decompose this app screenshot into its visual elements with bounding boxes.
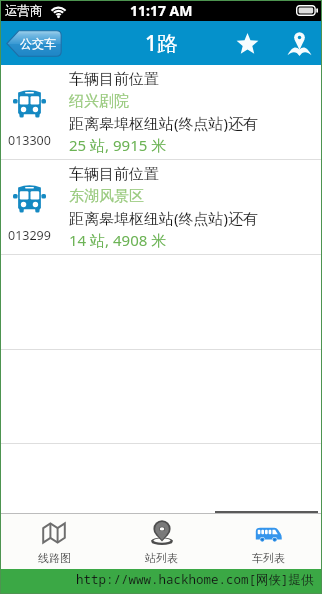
staticText: 距离皋埠枢纽站(终点站)还有: [69, 208, 259, 228]
button[interactable]: 车列表: [215, 514, 322, 569]
staticText: 运营商: [5, 3, 43, 19]
staticText: 1路: [145, 29, 179, 58]
staticText: 车列表: [252, 551, 285, 565]
button[interactable]: Map: [282, 26, 316, 60]
staticText: 线路图: [38, 551, 71, 565]
button[interactable]: 公交车: [6, 30, 62, 57]
staticText: 绍兴剧院: [69, 92, 129, 111]
staticText: 013299: [8, 227, 51, 244]
staticText: 站列表: [145, 551, 178, 565]
button[interactable]: 线路图: [0, 514, 108, 569]
button[interactable]: 站列表: [108, 514, 215, 569]
staticText: 距离皋埠枢纽站(终点站)还有: [69, 113, 259, 133]
button[interactable]: 013299: [0, 160, 322, 255]
staticText: 车辆目前位置: [69, 70, 159, 89]
staticText: 11:17 AM: [130, 1, 193, 20]
staticText: 车辆目前位置: [69, 165, 159, 184]
staticText: 14 站, 4908 米: [69, 230, 167, 250]
staticText: 公交车: [20, 36, 56, 51]
staticText: 东湖风景区: [69, 187, 144, 206]
staticText: 013300: [8, 132, 51, 149]
button[interactable]: 013300: [0, 65, 322, 160]
staticText: http://www.hackhome.com[网侠]提供: [76, 571, 314, 588]
staticText: 25 站, 9915 米: [69, 135, 167, 155]
button[interactable]: Favorite: [230, 26, 264, 60]
